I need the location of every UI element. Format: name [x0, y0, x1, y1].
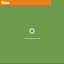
button[interactable]: No items — [29, 28, 35, 34]
button[interactable]: Navigate up — [0, 0, 2, 5]
button[interactable]: Notes — [2, 0, 49, 5]
button[interactable]: More options — [49, 0, 51, 5]
staticText: Nothing here yet — [2, 37, 62, 40]
staticText: Notes — [2, 1, 10, 5]
